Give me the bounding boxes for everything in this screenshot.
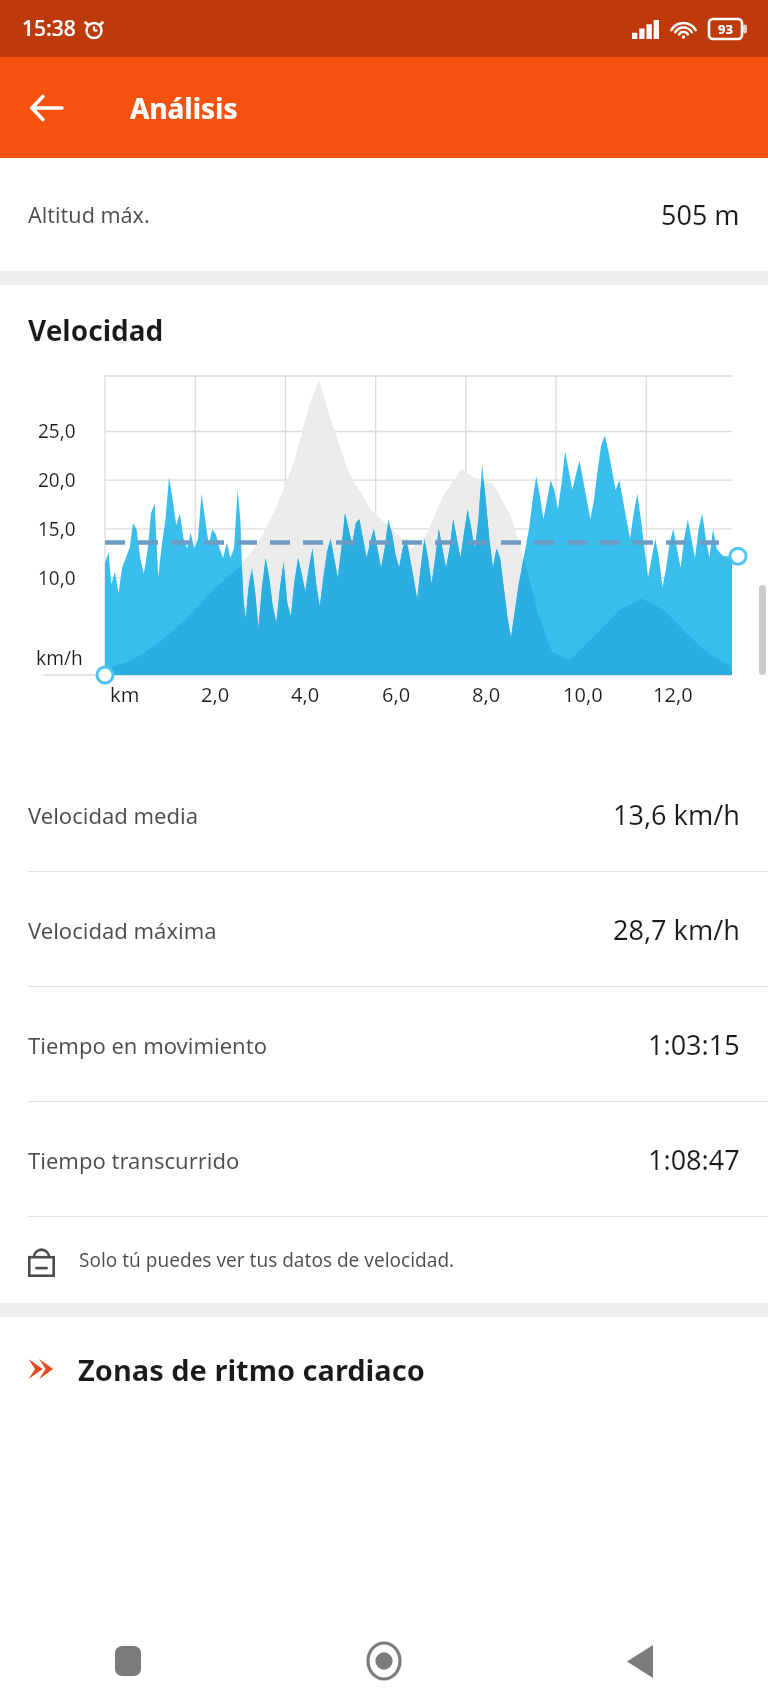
staticText: Análisis (130, 89, 238, 127)
staticText: 2,0 (201, 681, 230, 708)
button[interactable]: Tiempo transcurrido (0, 1102, 768, 1217)
staticText: 93 (718, 20, 733, 38)
staticText: 8,0 (472, 681, 501, 708)
staticText: 6,0 (382, 681, 411, 708)
staticText: 505 m (661, 196, 740, 233)
staticText: Solo tú puedes ver tus datos de velocida… (79, 1247, 455, 1273)
staticText: km (110, 681, 140, 708)
button[interactable]: Home (256, 1615, 512, 1707)
staticText: 28,7 km/h (613, 911, 740, 948)
button[interactable]: Tiempo en movimiento (0, 987, 768, 1102)
staticText: 10,0 (38, 565, 76, 591)
staticText: 1:03:15 (648, 1026, 740, 1063)
staticText: 1:08:47 (648, 1141, 740, 1178)
staticText: Velocidad (28, 311, 164, 349)
button[interactable]: Back (14, 76, 78, 140)
staticText: 10,0 (563, 681, 603, 708)
button[interactable]: Altitud máx. (0, 158, 768, 271)
staticText: Tiempo en movimiento (28, 1030, 267, 1060)
staticText: Velocidad media (28, 800, 199, 830)
button[interactable]: Recents (0, 1615, 256, 1707)
button[interactable]: Velocidad media (0, 757, 768, 872)
staticText: 15,0 (38, 516, 76, 542)
staticText: 12,0 (653, 681, 693, 708)
button[interactable]: Zonas de ritmo cardiaco (0, 1317, 768, 1421)
staticText: 13,6 km/h (613, 796, 740, 833)
staticText: 15:38 (22, 14, 76, 43)
button[interactable]: Velocidad máxima (0, 872, 768, 987)
staticText: Altitud máx. (28, 200, 150, 229)
staticText: Velocidad máxima (28, 915, 217, 945)
staticText: 4,0 (291, 681, 320, 708)
button[interactable]: Back (512, 1615, 768, 1707)
staticText: 25,0 (38, 418, 76, 444)
staticText: km/h (36, 645, 83, 671)
staticText: Tiempo transcurrido (28, 1145, 240, 1175)
staticText: 20,0 (38, 467, 76, 493)
staticText: Zonas de ritmo cardiaco (78, 1350, 425, 1389)
